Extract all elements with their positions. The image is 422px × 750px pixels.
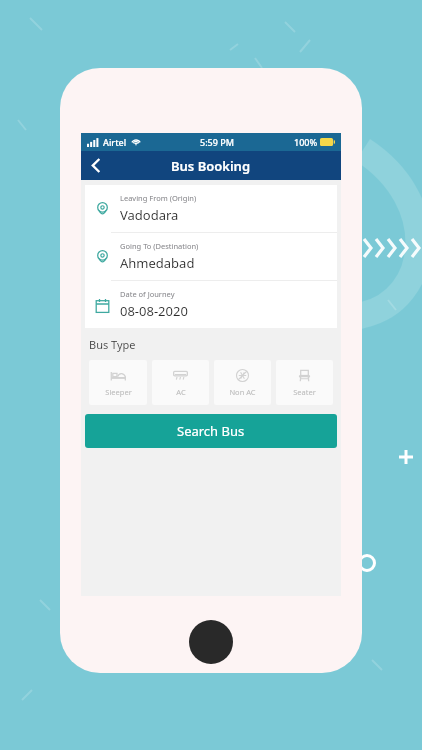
staticText: 5:59 PM bbox=[200, 136, 234, 148]
button[interactable]: Non AC bbox=[214, 360, 271, 405]
button[interactable]: Home bbox=[189, 620, 233, 664]
button[interactable]: Seater bbox=[276, 360, 333, 405]
button[interactable]: Going To (Destination) bbox=[85, 233, 337, 280]
staticText: 100% bbox=[294, 136, 318, 148]
staticText: Sleeper bbox=[105, 387, 132, 397]
staticText: Bus Booking bbox=[171, 157, 251, 175]
button[interactable]: Back bbox=[81, 151, 111, 180]
button[interactable]: AC bbox=[152, 360, 209, 405]
staticText: Search Bus bbox=[177, 422, 245, 440]
staticText: Vadodara bbox=[120, 206, 179, 224]
staticText: Bus Type bbox=[89, 337, 136, 352]
staticText: Non AC bbox=[229, 387, 256, 397]
button[interactable]: Search Bus bbox=[85, 414, 337, 448]
staticText: Airtel bbox=[103, 136, 127, 148]
button[interactable]: Date of Journey bbox=[85, 281, 337, 328]
staticText: AC bbox=[176, 387, 186, 397]
staticText: Seater bbox=[293, 387, 316, 397]
staticText: Date of Journey bbox=[120, 289, 175, 299]
staticText: 08-08-2020 bbox=[120, 302, 188, 320]
button[interactable]: Sleeper bbox=[89, 360, 147, 405]
staticText: Ahmedabad bbox=[120, 254, 195, 272]
staticText: Leaving From (Origin) bbox=[120, 193, 197, 203]
staticText: Going To (Destination) bbox=[120, 241, 199, 251]
button[interactable]: Leaving From (Origin) bbox=[85, 185, 337, 232]
